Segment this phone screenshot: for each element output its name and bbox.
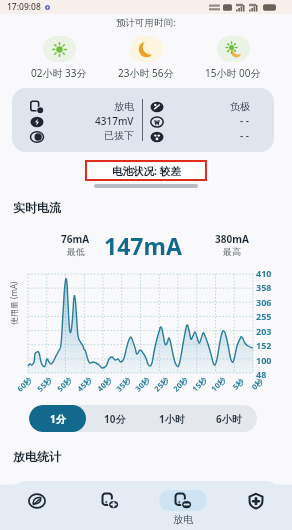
staticText: 60秒 [15, 374, 34, 394]
button[interactable]: 环保模式 [0, 477, 73, 530]
staticText: 放电统计 [13, 449, 61, 464]
staticText: 已拔下 [104, 129, 134, 142]
button[interactable]: 6小时 [200, 405, 257, 432]
staticText: 35秒 [114, 374, 133, 394]
staticText: 使用量 (mA) [8, 281, 19, 325]
staticText: 最低 [67, 246, 85, 257]
staticText: 1分 [50, 412, 66, 426]
staticText: 48 [256, 368, 267, 380]
staticText: 预计可用时间: [116, 16, 176, 29]
staticText: 147mA [104, 230, 182, 261]
button[interactable]: 10分 [86, 405, 143, 432]
staticText: 4317mV [95, 114, 134, 128]
staticText: 152 [256, 339, 272, 351]
staticText: 20秒 [171, 374, 190, 394]
staticText: 203 [256, 325, 272, 337]
staticText: - - [240, 114, 250, 128]
staticText: 45秒 [75, 374, 94, 394]
button[interactable]: 放电 [146, 477, 219, 530]
staticText: 76mA [61, 232, 90, 246]
staticText: 放电 [114, 100, 134, 113]
staticText: 10分 [104, 412, 126, 426]
staticText: 17:09:08 [7, 1, 41, 13]
staticText: 15秒 [190, 374, 209, 394]
staticText: 5秒 [230, 376, 246, 392]
staticText: 100 [256, 354, 272, 366]
staticText: 电池状况: 较差 [112, 164, 181, 178]
staticText: 410 [256, 267, 272, 279]
staticText: 40秒 [95, 374, 114, 394]
staticText: 306 [256, 296, 272, 308]
staticText: 6小时 [216, 412, 242, 426]
staticText: 50秒 [55, 374, 74, 394]
staticText: 23小时 56分 [118, 66, 174, 80]
staticText: 55秒 [35, 374, 54, 394]
staticText: 25秒 [152, 374, 171, 394]
staticText: 02小时 33分 [31, 66, 87, 80]
staticText: 负极 [230, 100, 250, 113]
staticText: - - [240, 129, 250, 143]
button[interactable]: 1分 [29, 405, 86, 432]
button[interactable]: 充电 [73, 477, 146, 530]
button[interactable]: 1小时 [143, 405, 200, 432]
staticText: 最高 [223, 246, 241, 257]
staticText: 30秒 [133, 374, 152, 394]
staticText: 实时电流 [13, 200, 61, 215]
staticText: 15小时 00分 [205, 66, 261, 80]
staticText: 255 [256, 310, 272, 322]
staticText: 放电 [173, 513, 193, 526]
button[interactable]: 保护 [219, 477, 292, 530]
staticText: 358 [256, 281, 272, 293]
staticText: 1小时 [159, 412, 185, 426]
staticText: 0秒 [249, 376, 265, 392]
staticText: 10秒 [209, 374, 228, 394]
staticText: 380mA [215, 232, 249, 246]
